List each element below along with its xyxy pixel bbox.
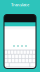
- staticText: Translate: [11, 2, 29, 7]
